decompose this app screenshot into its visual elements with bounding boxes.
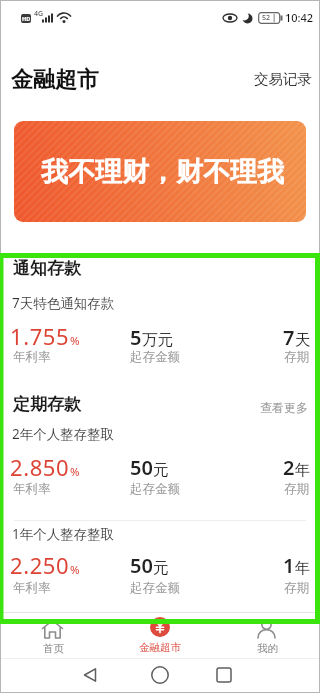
staticText: 通知存款	[13, 258, 81, 279]
button[interactable]: 我不理财，财不理我	[14, 121, 306, 222]
staticText: 起存金额	[130, 349, 180, 365]
staticText: 万元	[142, 330, 173, 350]
staticText: %	[70, 464, 80, 480]
staticText: 年	[295, 460, 311, 480]
staticText: 天	[295, 330, 311, 350]
staticText: 交易记录	[254, 70, 312, 88]
staticText: 年利率	[13, 580, 51, 596]
staticText: 存期	[284, 580, 309, 596]
staticText: 年利率	[13, 349, 51, 365]
staticText: 起存金额	[130, 580, 180, 596]
staticText: 年利率	[13, 481, 51, 497]
staticText: 50	[130, 454, 153, 481]
staticText: 10:42	[285, 10, 314, 25]
staticText: 1	[283, 552, 295, 579]
staticText: 5	[130, 324, 142, 351]
staticText: 1.755	[10, 321, 70, 351]
staticText: 2.850	[10, 452, 70, 482]
staticText: 存期	[284, 481, 309, 497]
staticText: 起存金额	[130, 481, 180, 497]
button[interactable]	[76, 661, 104, 689]
staticText: 元	[153, 460, 169, 480]
button[interactable]: 我的	[227, 613, 307, 658]
staticText: HD	[22, 15, 31, 22]
button[interactable]	[0, 419, 320, 519]
button[interactable]: 查看更多	[240, 396, 310, 418]
staticText: 查看更多	[260, 400, 308, 415]
button[interactable]: 交易记录	[240, 65, 314, 93]
button[interactable]: 金融超市	[120, 613, 200, 658]
staticText: 定期存款	[13, 394, 81, 415]
staticText: 52	[262, 13, 271, 23]
button[interactable]	[0, 521, 320, 605]
staticText: 2	[283, 454, 295, 481]
staticText: 我不理财，财不理我	[41, 155, 284, 189]
button[interactable]	[146, 661, 174, 689]
staticText: 4G	[34, 9, 44, 19]
staticText: %	[70, 333, 80, 349]
staticText: 金融超市	[139, 641, 181, 654]
staticText: 我的	[257, 642, 278, 655]
staticText: %	[70, 562, 80, 578]
button[interactable]	[0, 288, 320, 370]
staticText: 2年个人整存整取	[12, 425, 115, 443]
staticText: 7	[283, 324, 295, 351]
staticText: 2.250	[10, 550, 70, 580]
staticText: 存期	[284, 349, 309, 365]
staticText: 元	[153, 558, 169, 578]
button[interactable]	[210, 661, 238, 689]
staticText: 1年个人整存整取	[12, 525, 115, 543]
staticText: 首页	[43, 642, 64, 655]
staticText: 年	[295, 558, 311, 578]
staticText: 50	[130, 552, 153, 579]
staticText: 金融超市	[11, 66, 99, 94]
button[interactable]: 首页	[13, 613, 93, 658]
staticText: 7天特色通知存款	[12, 294, 115, 312]
